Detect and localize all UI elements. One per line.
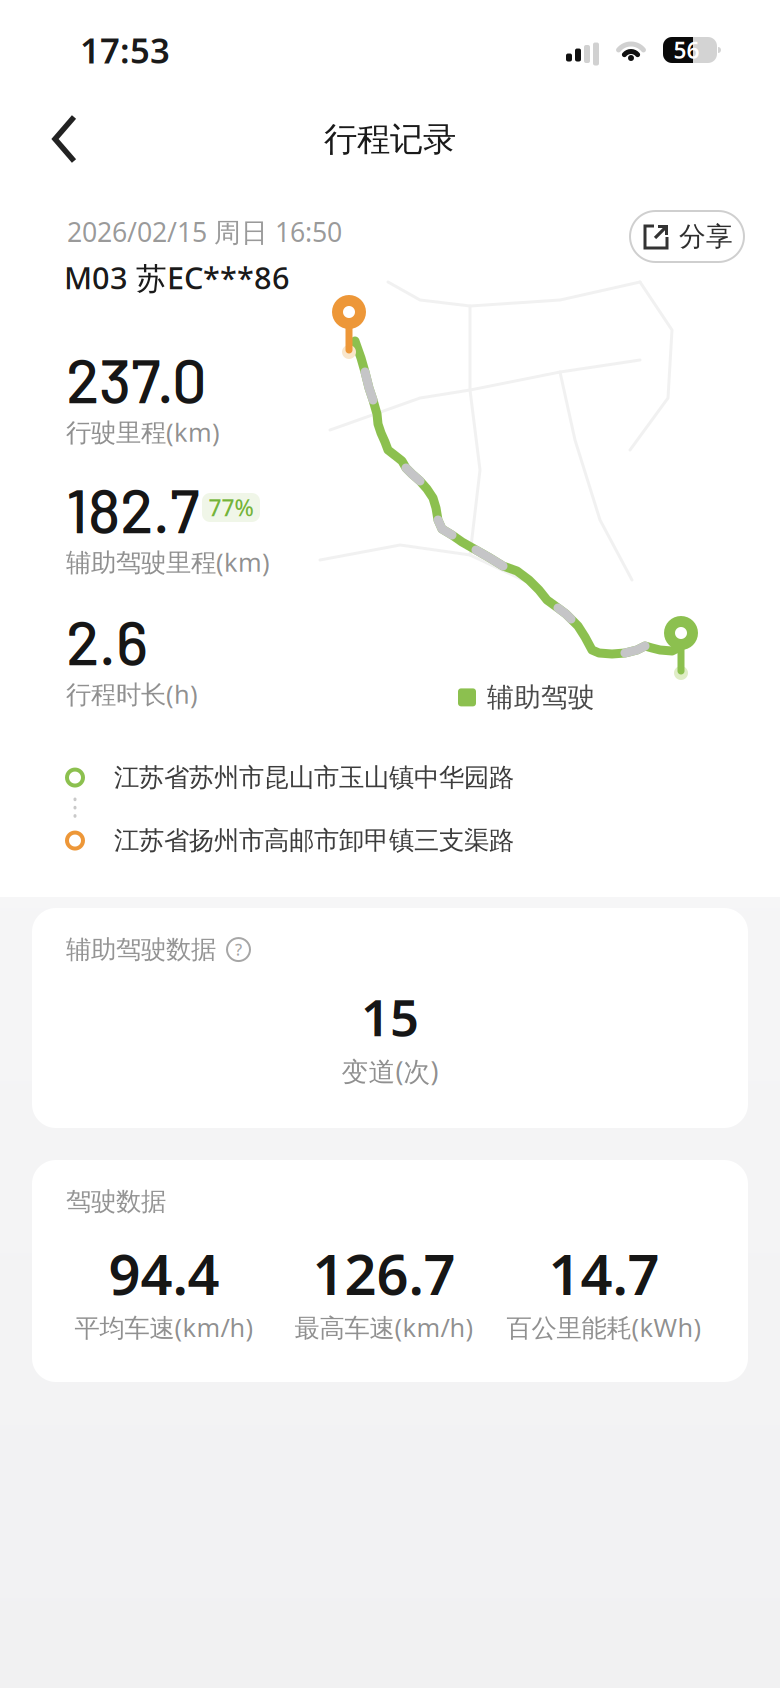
staticText: 平均车速(km/h) [74,1310,253,1344]
staticText: 14.7 [548,1236,659,1310]
staticText: 2026/02/15 周日 16:50 [67,214,342,249]
staticText: 江苏省苏州市昆山市玉山镇中华园路 [114,762,514,793]
staticText: 辅助驾驶数据 [66,934,216,965]
staticText: 94.4 [108,1236,219,1310]
staticText: 2.6 [66,604,148,678]
staticText: 237.0 [66,342,207,416]
staticText: 行驶里程(km) [66,415,220,449]
staticText: 变道(次) [341,1053,438,1089]
staticText: 百公里能耗(kWh) [506,1310,701,1344]
staticText: M03 苏EC***86 [64,257,290,298]
staticText: 分享 [679,220,733,253]
staticText: 77% [208,492,253,522]
staticText: ? [235,939,242,960]
staticText: 最高车速(km/h) [294,1310,473,1344]
staticText: 行程时长(h) [66,677,198,711]
staticText: 驾驶数据 [66,1186,166,1217]
staticText: 行程记录 [324,119,456,160]
staticText: 辅助驾驶里程(km) [66,545,270,579]
staticText: 182.7 [66,472,200,546]
staticText: 15 [361,983,419,1050]
button[interactable]: Back [0,0,78,164]
button[interactable]: 分享 [0,0,744,262]
staticText: 17:53 [80,27,170,73]
staticText: 56 [673,35,699,65]
staticText: 江苏省扬州市高邮市卸甲镇三支渠路 [114,825,514,856]
staticText: 126.7 [312,1236,455,1310]
staticText: 辅助驾驶 [487,681,595,714]
